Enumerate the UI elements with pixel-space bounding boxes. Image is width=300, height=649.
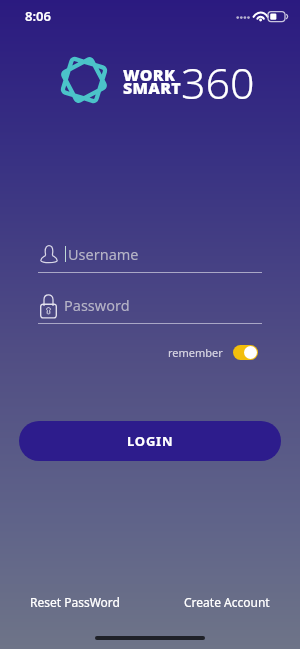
button[interactable]: Reset PassWord bbox=[30, 594, 120, 610]
staticText: LOGIN bbox=[127, 432, 174, 450]
button[interactable]: Create Account bbox=[184, 594, 270, 610]
button[interactable]: Password bbox=[38, 291, 262, 324]
button[interactable]: LOGIN bbox=[19, 421, 281, 461]
staticText: 8:06 bbox=[25, 7, 51, 25]
button[interactable]: Username bbox=[38, 240, 262, 273]
staticText: Password bbox=[64, 295, 130, 315]
staticText: Username bbox=[68, 244, 139, 264]
staticText: Reset PassWord bbox=[30, 594, 120, 610]
staticText: SMART bbox=[123, 77, 182, 99]
staticText: Create Account bbox=[184, 594, 270, 610]
staticText: remember bbox=[168, 345, 223, 360]
staticText: 360 bbox=[181, 53, 255, 112]
button[interactable]: Remember me toggle bbox=[233, 345, 258, 360]
staticText: WORK bbox=[123, 64, 176, 86]
